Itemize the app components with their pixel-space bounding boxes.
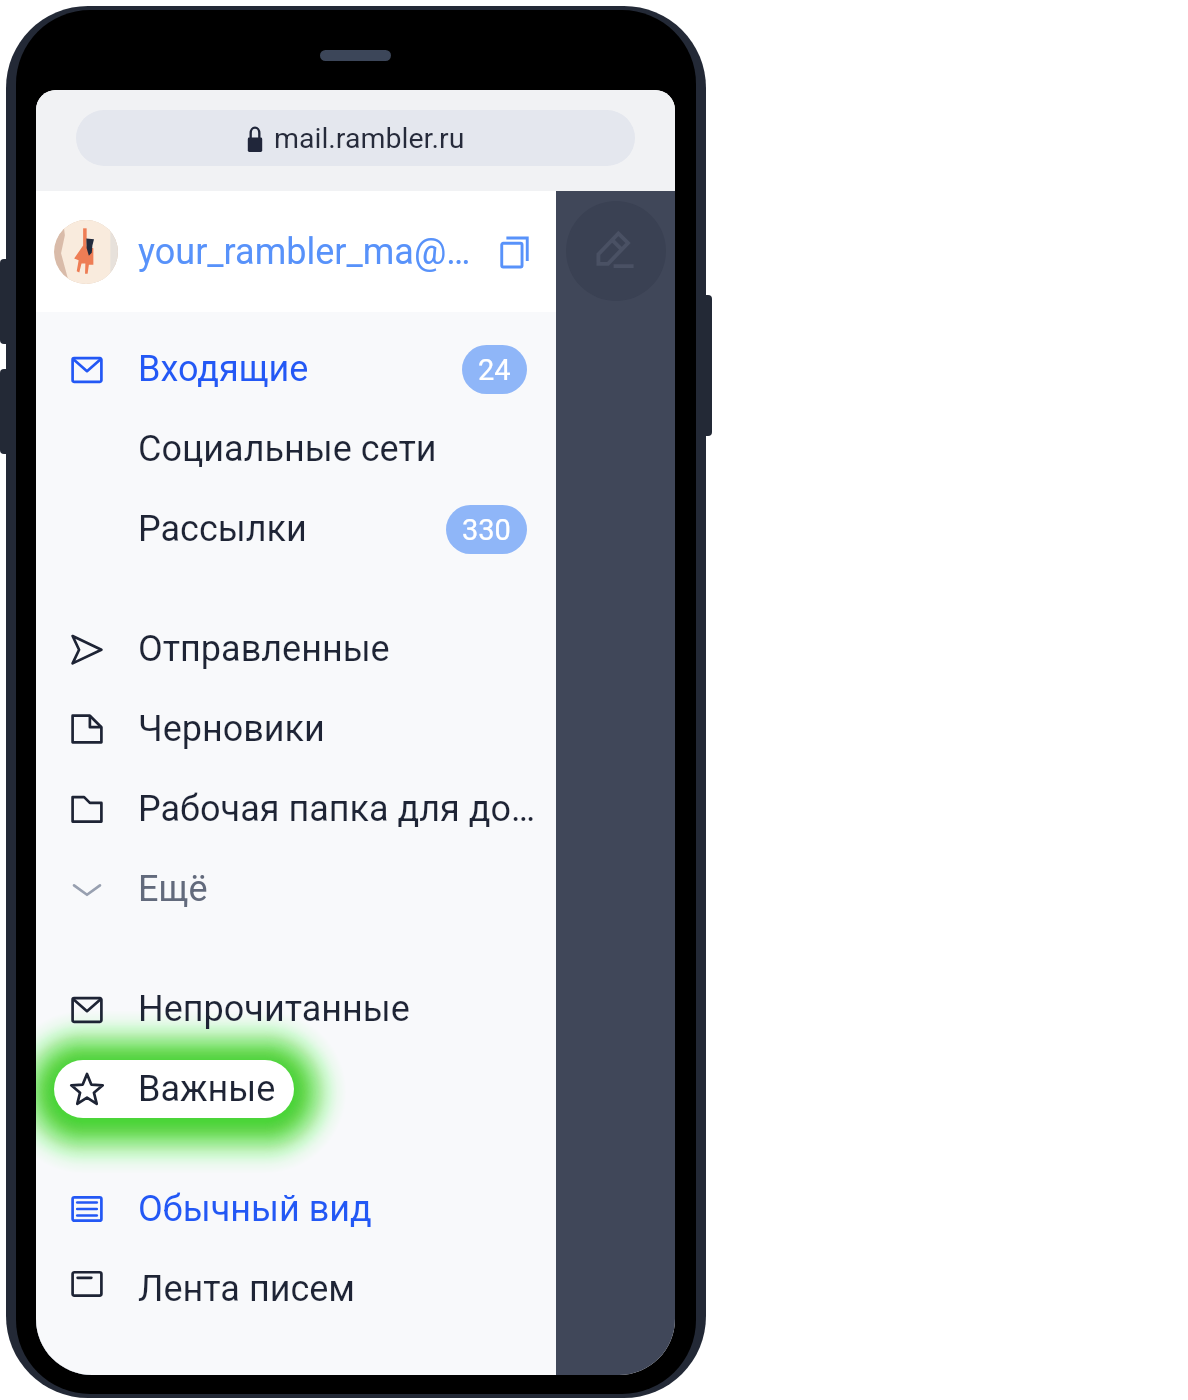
staticText: Ещё: [138, 868, 208, 910]
staticText: 330: [462, 513, 511, 547]
button[interactable]: Входящие: [36, 329, 556, 409]
staticText: Непрочитанные: [138, 988, 410, 1030]
button[interactable]: Социальные сети: [36, 409, 556, 489]
staticText: 24: [478, 353, 511, 387]
staticText: mail.rambler.ru: [274, 122, 465, 155]
button[interactable]: Copy address: [493, 231, 535, 273]
button[interactable]: your_rambler_ma@…: [54, 191, 556, 312]
button[interactable]: Compose new email: [566, 201, 666, 301]
button[interactable]: Отправленные: [36, 609, 556, 689]
button[interactable]: Рабочая папка для до…: [36, 769, 556, 849]
staticText: Черновики: [138, 708, 325, 750]
button[interactable]: mail.rambler.ru: [76, 110, 635, 166]
button[interactable]: Обычный вид: [36, 1169, 556, 1249]
staticText: Обычный вид: [138, 1188, 372, 1230]
staticText: Рассылки: [138, 508, 307, 550]
button[interactable]: Непрочитанные: [36, 969, 556, 1049]
staticText: Отправленные: [138, 628, 390, 670]
staticText: Важные: [138, 1068, 276, 1110]
staticText: your_rambler_ma@…: [138, 231, 471, 273]
button[interactable]: Ещё: [36, 849, 556, 929]
button[interactable]: Лента писем: [36, 1249, 556, 1329]
staticText: Рабочая папка для до…: [138, 788, 536, 830]
staticText: Социальные сети: [138, 428, 437, 470]
button[interactable]: Рассылки: [36, 489, 556, 569]
button[interactable]: Важные: [36, 1049, 556, 1129]
button[interactable]: Черновики: [36, 689, 556, 769]
staticText: Лента писем: [138, 1268, 356, 1310]
staticText: Входящие: [138, 348, 309, 390]
